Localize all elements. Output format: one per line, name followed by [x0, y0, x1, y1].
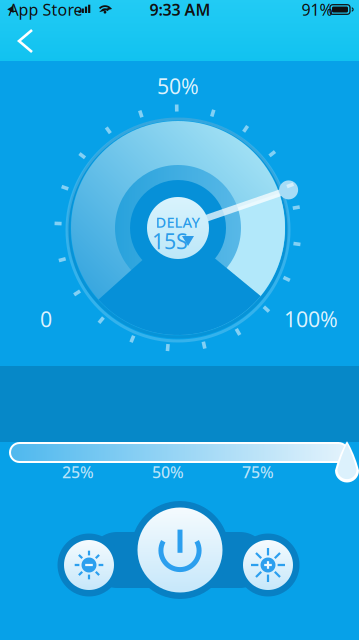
staticText: 100%: [284, 305, 338, 333]
staticText: 50%: [152, 461, 184, 483]
button[interactable]: Increase brightness: [243, 540, 293, 590]
staticText: 75%: [242, 461, 274, 483]
staticText: App Store: [8, 0, 82, 20]
staticText: DELAY: [155, 212, 200, 232]
button[interactable]: Decrease brightness: [64, 540, 114, 590]
staticText: 91%: [301, 0, 332, 20]
staticText: 25%: [62, 461, 94, 483]
button[interactable]: Power: [137, 507, 222, 592]
staticText: 15S: [152, 227, 188, 255]
staticText: 9:33 AM: [149, 0, 210, 20]
button[interactable]: Back: [4, 20, 50, 62]
staticText: 50%: [157, 72, 199, 100]
staticText: 0: [40, 305, 52, 333]
